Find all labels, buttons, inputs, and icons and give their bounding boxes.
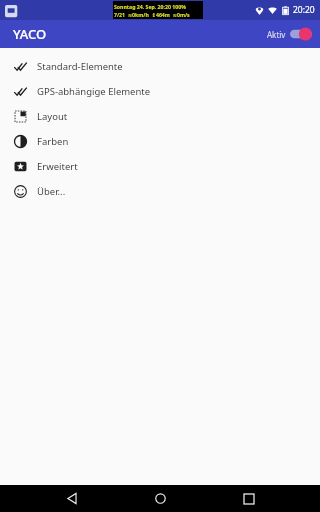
button[interactable]: GPS-abhängige Elemente <box>0 79 320 104</box>
staticText: 7/21 ≈0km/h ↕464m ≈0m/s <box>114 11 203 18</box>
button[interactable]: Back <box>55 485 89 512</box>
button[interactable]: Standard-Elemente <box>0 54 320 79</box>
staticText: Erweitert <box>37 160 78 173</box>
button[interactable]: Farben <box>0 129 320 154</box>
staticText: Farben <box>37 135 69 148</box>
staticText: Über... <box>37 185 66 198</box>
button[interactable]: Erweitert <box>0 154 320 179</box>
other: Aktiv toggle <box>290 27 312 41</box>
button[interactable]: Home <box>143 485 177 512</box>
staticText: GPS-abhängige Elemente <box>37 85 151 98</box>
staticText: Layout <box>37 110 68 123</box>
button[interactable]: Recent apps <box>232 485 266 512</box>
staticText: Standard-Elemente <box>37 60 123 73</box>
staticText: Aktiv <box>267 29 286 40</box>
button[interactable]: Aktiv <box>267 27 312 41</box>
staticText: Sonntag 24. Sep. 20:20 100% <box>114 3 203 10</box>
staticText: YACO <box>13 25 47 43</box>
staticText: 20:20 <box>293 4 315 16</box>
button[interactable]: Über... <box>0 179 320 204</box>
button[interactable]: Layout <box>0 104 320 129</box>
